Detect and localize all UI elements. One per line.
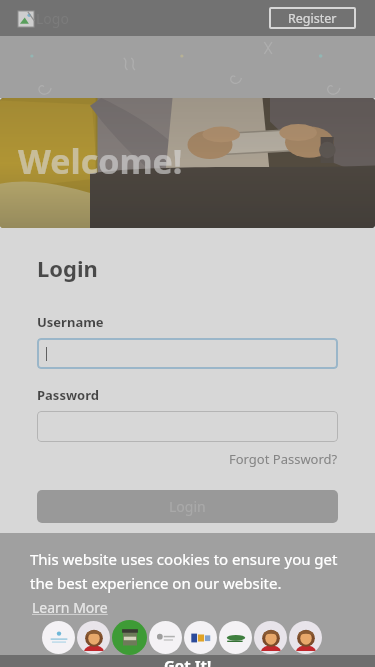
staticText: Password (37, 386, 99, 404)
button[interactable]: Got It! (0, 655, 375, 667)
button[interactable]: Learn More (32, 598, 108, 617)
staticText: This website uses cookies to ensure you … (30, 549, 338, 569)
staticText: Username (37, 313, 104, 331)
staticText: Got It! (164, 655, 212, 667)
button[interactable]: Register (269, 7, 356, 29)
button[interactable] (37, 411, 338, 442)
button[interactable] (37, 338, 338, 369)
staticText: Register (288, 10, 337, 27)
button[interactable]: Logo (18, 9, 69, 28)
staticText: Login (169, 497, 206, 516)
staticText: Welcome! (18, 138, 183, 184)
button[interactable]: Forgot Password? (229, 450, 338, 468)
button[interactable]: Login (37, 490, 338, 523)
staticText: Login (37, 253, 98, 283)
staticText: the best experience on our website. (30, 573, 282, 593)
